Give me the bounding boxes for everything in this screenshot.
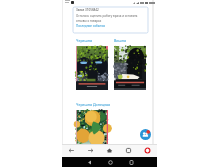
button[interactable]: Opera menu	[138, 144, 157, 157]
button[interactable]	[114, 46, 146, 90]
staticText: Последние события	[76, 24, 106, 28]
button[interactable]: Вишня	[114, 38, 144, 43]
button[interactable]: Back	[62, 144, 81, 157]
button[interactable]: Messenger	[140, 129, 151, 140]
button[interactable]: Recents	[125, 157, 137, 167]
button[interactable]: Back	[83, 157, 95, 167]
button[interactable]: Forward	[81, 144, 100, 157]
button[interactable]	[76, 46, 108, 90]
button[interactable]: Home	[104, 157, 116, 167]
staticText: Черешня	[76, 38, 93, 43]
staticText: Осталось оценить работу врача и оставить…	[76, 14, 138, 22]
button[interactable]: Черешня Донецкая	[76, 102, 112, 107]
button[interactable]: Home	[100, 144, 119, 157]
staticText: Черешня Донецкая	[76, 102, 111, 107]
staticText: Вишня	[114, 38, 127, 43]
button[interactable]: Заказ 31056842	[73, 7, 148, 33]
button[interactable]: Tabs	[119, 144, 138, 157]
button[interactable]: Черешня	[76, 38, 106, 43]
staticText: Заказ 31056842	[76, 8, 99, 12]
button[interactable]	[76, 110, 108, 144]
